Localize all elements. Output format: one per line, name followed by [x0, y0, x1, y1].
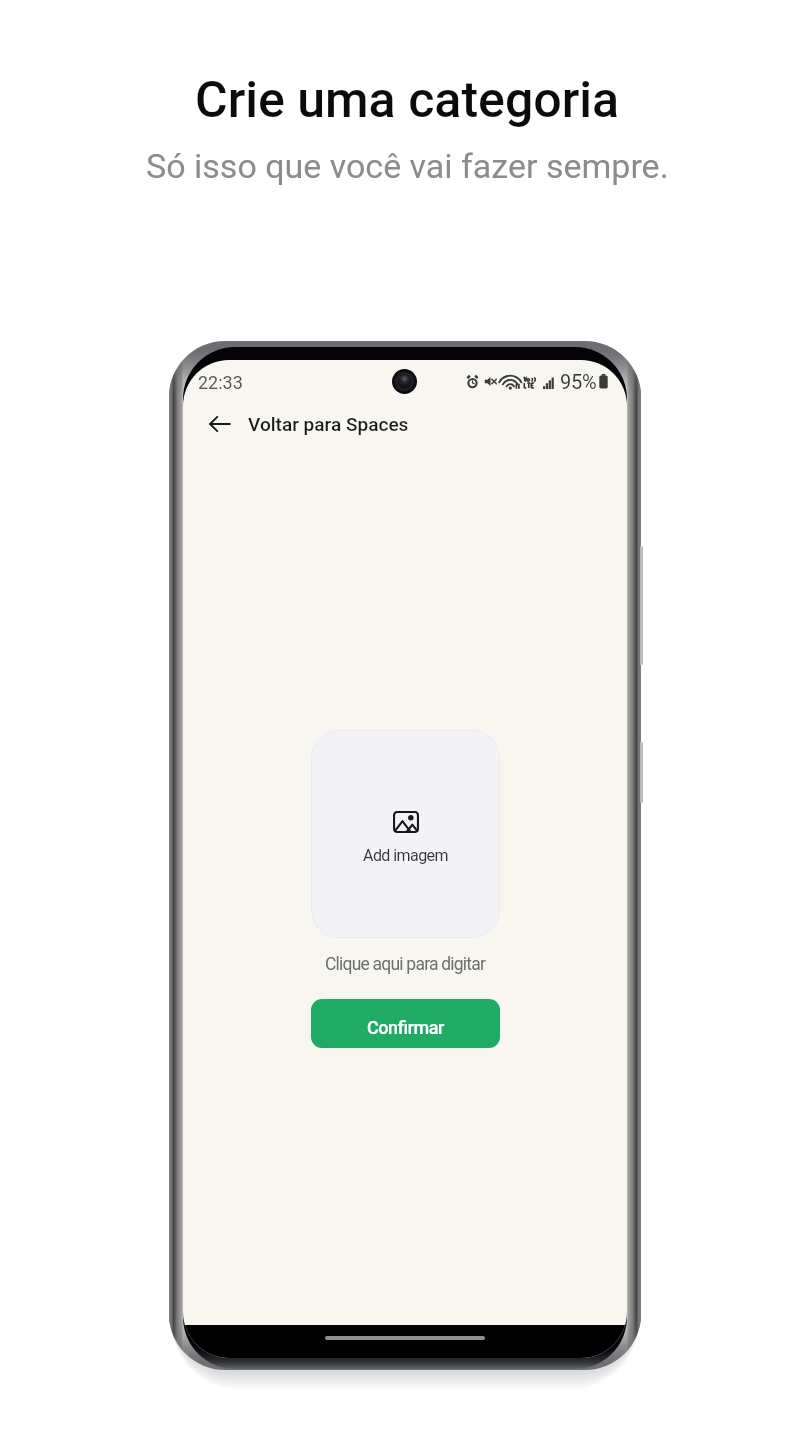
- staticText: Confirmar: [367, 1017, 444, 1038]
- button[interactable]: Power: [639, 742, 643, 803]
- staticText: 22:33: [198, 372, 243, 393]
- button[interactable]: Add imagem: [311, 730, 500, 938]
- staticText: Add imagem: [363, 846, 448, 865]
- button[interactable]: Volume: [639, 546, 643, 665]
- button[interactable]: Voltar: [203, 404, 239, 444]
- button[interactable]: Confirmar: [311, 999, 500, 1048]
- staticText: Crie uma categoria: [195, 71, 620, 130]
- staticText: Clique aqui para digitar: [325, 954, 486, 975]
- staticText: Só isso que você vai fazer sempre.: [146, 146, 669, 186]
- staticText: 95%: [560, 370, 597, 393]
- staticText: Voltar para Spaces: [248, 413, 409, 435]
